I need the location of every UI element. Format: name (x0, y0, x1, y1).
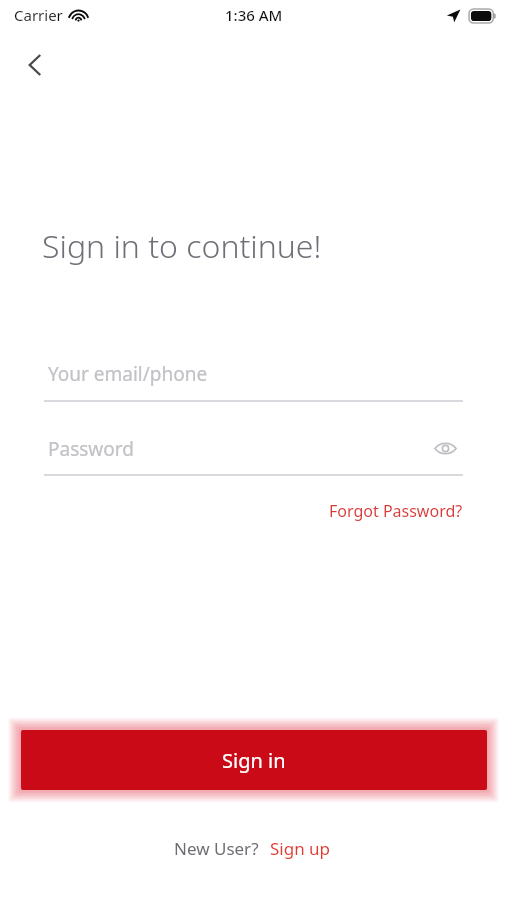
staticText: Carrier (14, 5, 63, 25)
staticText: Forgot Password? (329, 500, 463, 522)
staticText: Sign in to continue! (42, 224, 322, 268)
button[interactable]: Show password (427, 430, 463, 466)
button[interactable]: Your email/phone (44, 352, 463, 402)
staticText: Your email/phone (48, 361, 208, 387)
staticText: New User? (174, 837, 259, 860)
staticText: 1:36 AM (225, 5, 283, 25)
button[interactable]: Sign in (21, 730, 487, 790)
button[interactable]: Forgot Password? (295, 494, 463, 528)
staticText: Password (48, 436, 134, 462)
button[interactable]: Back (12, 42, 58, 88)
button[interactable]: Sign up (268, 832, 333, 865)
staticText: Sign in (222, 747, 286, 774)
staticText: Sign up (270, 837, 331, 860)
button[interactable]: Password (44, 427, 463, 476)
